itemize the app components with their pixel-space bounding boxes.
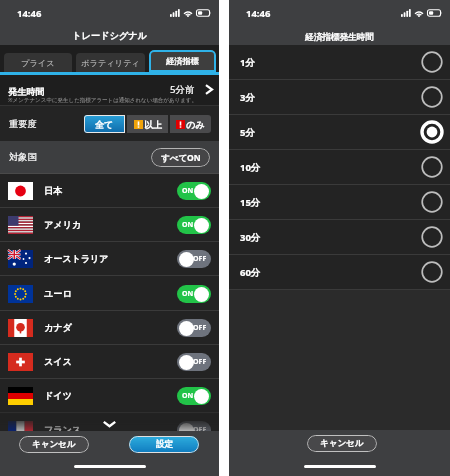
- other: 30分 option: [421, 226, 443, 248]
- button[interactable]: キャンセル: [307, 435, 377, 452]
- staticText: のみ: [186, 119, 205, 130]
- button[interactable]: OFF: [177, 319, 211, 337]
- staticText: 日本: [44, 185, 62, 196]
- other: 60分 option: [421, 261, 443, 283]
- staticText: カナダ: [44, 322, 72, 333]
- button[interactable]: ボラティリティ: [76, 53, 145, 72]
- button[interactable]: OFF: [177, 421, 211, 431]
- staticText: 経済指標発生時間: [305, 32, 374, 43]
- button[interactable]: 10分: [229, 150, 450, 184]
- staticText: 対象国: [9, 151, 37, 163]
- button[interactable]: ON: [177, 387, 211, 405]
- staticText: すべてON: [161, 152, 201, 164]
- other: Expand list: [103, 421, 116, 427]
- other: 15分 option: [421, 191, 443, 213]
- button[interactable]: ON: [177, 216, 211, 234]
- staticText: トレードシグナル: [72, 30, 148, 42]
- staticText: 15分: [240, 196, 261, 209]
- staticText: アメリカ: [44, 219, 81, 230]
- staticText: ON: [182, 391, 194, 401]
- staticText: 30分: [240, 231, 261, 244]
- button[interactable]: ドイツ: [0, 379, 219, 412]
- staticText: 14:46: [17, 7, 42, 20]
- staticText: ボラティリティ: [81, 58, 140, 68]
- button[interactable]: オーストラリア: [0, 242, 219, 275]
- button[interactable]: カナダ: [0, 311, 219, 344]
- staticText: 3分: [240, 91, 255, 104]
- staticText: OFF: [193, 323, 207, 333]
- staticText: フランス: [44, 424, 81, 431]
- button[interactable]: 5分: [229, 115, 450, 149]
- staticText: 発生時間: [8, 86, 45, 98]
- staticText: 全て: [95, 119, 114, 130]
- button[interactable]: 1分: [229, 45, 450, 79]
- button[interactable]: すべてON: [151, 148, 210, 167]
- button[interactable]: スイス: [0, 345, 219, 378]
- button[interactable]: 30分: [229, 220, 450, 254]
- staticText: キャンセル: [320, 438, 364, 449]
- button[interactable]: ON: [177, 285, 211, 303]
- staticText: ON: [182, 289, 194, 299]
- button[interactable]: 15分: [229, 185, 450, 219]
- staticText: OFF: [193, 254, 207, 264]
- staticText: ON: [182, 220, 194, 230]
- button[interactable]: フランス: [0, 413, 219, 431]
- button[interactable]: 発生時間: [0, 75, 219, 105]
- staticText: プライス: [21, 58, 55, 68]
- other: 1分 option: [421, 51, 443, 73]
- button[interactable]: 60分: [229, 255, 450, 289]
- other: 5分 option: [421, 121, 443, 143]
- button[interactable]: 全て: [84, 115, 125, 133]
- button[interactable]: 日本: [0, 174, 219, 207]
- button[interactable]: OFF: [177, 353, 211, 371]
- button[interactable]: アメリカ: [0, 208, 219, 241]
- staticText: 14:46: [246, 7, 271, 20]
- other: 3分 option: [421, 86, 443, 108]
- button[interactable]: プライス: [4, 53, 72, 72]
- staticText: スイス: [44, 356, 72, 367]
- button[interactable]: 3分: [229, 80, 450, 114]
- button[interactable]: ユーロ: [0, 277, 219, 310]
- button[interactable]: 設定: [129, 436, 199, 453]
- staticText: 設定: [156, 439, 173, 450]
- staticText: OFF: [193, 425, 207, 431]
- staticText: ユーロ: [44, 288, 72, 299]
- staticText: OFF: [193, 357, 207, 367]
- staticText: 以上: [144, 119, 162, 130]
- button[interactable]: キャンセル: [19, 436, 89, 453]
- staticText: 5分: [240, 126, 255, 139]
- other: 10分 option: [421, 156, 443, 178]
- staticText: 5分前: [170, 83, 195, 96]
- staticText: 10分: [240, 161, 261, 174]
- button[interactable]: のみ: [170, 115, 211, 133]
- button[interactable]: 経済指標: [149, 50, 216, 72]
- staticText: ※メンテナンス中に発生した指標アラートは通知されない場合があります。: [8, 96, 197, 104]
- staticText: ON: [182, 186, 194, 196]
- staticText: 重要度: [9, 118, 37, 130]
- staticText: ドイツ: [44, 390, 72, 401]
- button[interactable]: OFF: [177, 250, 211, 268]
- staticText: 60分: [240, 266, 261, 279]
- button[interactable]: ON: [177, 182, 211, 200]
- staticText: 経済指標: [166, 56, 199, 66]
- button[interactable]: 以上: [127, 115, 168, 133]
- staticText: キャンセル: [32, 439, 76, 450]
- staticText: オーストラリア: [44, 253, 109, 264]
- staticText: 1分: [240, 56, 255, 69]
